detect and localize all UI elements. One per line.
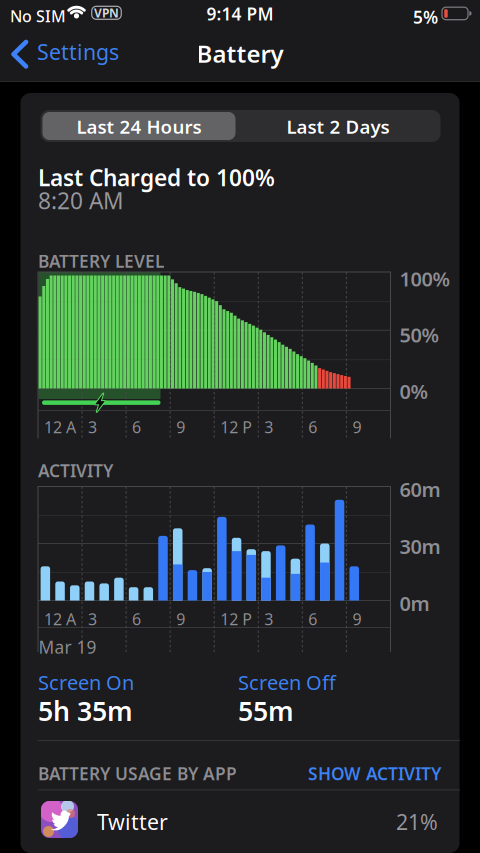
staticText: Last 24 Hours <box>76 114 201 139</box>
staticText: 21% <box>396 807 438 836</box>
staticText: Battery <box>196 38 283 69</box>
staticText: 0% <box>399 378 428 405</box>
staticText: 9 <box>352 608 361 630</box>
staticText: 9 <box>176 416 185 438</box>
staticText: 3 <box>264 608 273 630</box>
staticText: 12 P <box>220 608 252 630</box>
staticText: Screen On <box>38 669 134 696</box>
staticText: 0m <box>399 590 429 617</box>
staticText: Mar 19 <box>38 635 96 658</box>
staticText: 12 P <box>220 416 252 438</box>
staticText: Screen Off <box>238 669 336 696</box>
staticText: 60m <box>399 476 440 503</box>
staticText: 9 <box>352 416 361 438</box>
staticText: BATTERY LEVEL <box>38 249 164 272</box>
staticText: 9 <box>176 608 185 630</box>
staticText: 6 <box>308 608 317 630</box>
staticText: 3 <box>88 416 97 438</box>
staticText: Twitter <box>97 807 168 836</box>
staticText: 6 <box>132 416 141 438</box>
staticText: No SIM <box>10 5 66 27</box>
staticText: 30m <box>399 533 440 560</box>
staticText: 9:14 PM <box>206 2 273 25</box>
staticText: 5% <box>413 5 438 28</box>
staticText: 8:20 AM <box>38 185 124 216</box>
staticText: ACTIVITY <box>38 459 113 482</box>
staticText: Last Charged to 100% <box>38 162 275 193</box>
staticText: VPN <box>94 5 119 21</box>
staticText: BATTERY USAGE BY APP <box>38 762 237 785</box>
staticText: SHOW ACTIVITY <box>308 762 441 785</box>
staticText: 3 <box>264 416 273 438</box>
staticText: 55m <box>238 693 294 728</box>
staticText: 5h 35m <box>38 693 133 728</box>
staticText: 6 <box>308 416 317 438</box>
staticText: 6 <box>132 608 141 630</box>
staticText: Settings <box>37 37 119 66</box>
staticText: 50% <box>399 321 439 348</box>
staticText: 100% <box>399 265 450 292</box>
staticText: Last 2 Days <box>286 114 389 139</box>
staticText: 12 A <box>44 416 76 438</box>
staticText: 12 A <box>44 608 76 630</box>
staticText: 3 <box>88 608 97 630</box>
